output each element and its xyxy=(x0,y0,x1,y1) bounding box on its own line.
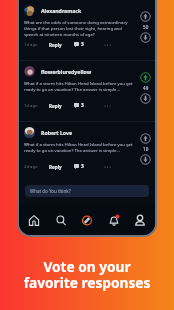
button[interactable]: Upvote xyxy=(140,11,151,22)
button[interactable]: Reply xyxy=(49,103,62,109)
button[interactable]: Downvote xyxy=(140,93,151,104)
button[interactable]: 3 xyxy=(74,102,84,109)
staticText: What do You think? xyxy=(30,188,71,194)
button[interactable]: 3 xyxy=(74,41,84,48)
button[interactable]: Search xyxy=(49,207,73,233)
staticText: 1d ago xyxy=(24,42,38,48)
button[interactable]: More xyxy=(104,103,112,109)
staticText: 10 xyxy=(143,146,149,152)
button[interactable]: Profile xyxy=(128,207,152,233)
staticText: 3 xyxy=(81,163,84,170)
staticText: 2d ago xyxy=(24,164,38,170)
button[interactable]: What do You think? xyxy=(25,185,149,197)
button[interactable]: Notifications xyxy=(102,207,126,233)
button[interactable]: Upvote xyxy=(140,133,151,144)
button[interactable]: More xyxy=(104,164,112,170)
staticText: 49 xyxy=(143,85,149,91)
staticText: Alexandramack xyxy=(41,7,82,14)
button[interactable]: Compose xyxy=(75,207,99,233)
button[interactable]: Downvote xyxy=(140,32,151,43)
staticText: What if a storm hits Hilton Head Island … xyxy=(24,141,135,153)
staticText: Robert Love xyxy=(41,129,73,136)
button[interactable]: Downvote xyxy=(140,154,151,165)
staticText: 3 xyxy=(81,102,84,109)
staticText: 50 xyxy=(143,24,149,30)
button[interactable]: More xyxy=(104,42,112,48)
staticText: flowerbluredyellow xyxy=(41,68,92,75)
button[interactable]: Reply xyxy=(49,164,62,170)
button[interactable]: Home xyxy=(22,207,46,233)
staticText: What if a storm hits Hilton Head Island … xyxy=(24,80,135,92)
staticText: What are the odds of someone doing extra… xyxy=(24,19,135,37)
staticText: 1d ago xyxy=(24,103,38,109)
button[interactable]: Reply xyxy=(49,42,62,48)
button[interactable]: Upvote xyxy=(140,72,151,83)
button[interactable]: 3 xyxy=(74,163,84,170)
staticText: 3 xyxy=(81,41,84,48)
staticText: Vote on your favorite responses xyxy=(0,257,174,292)
